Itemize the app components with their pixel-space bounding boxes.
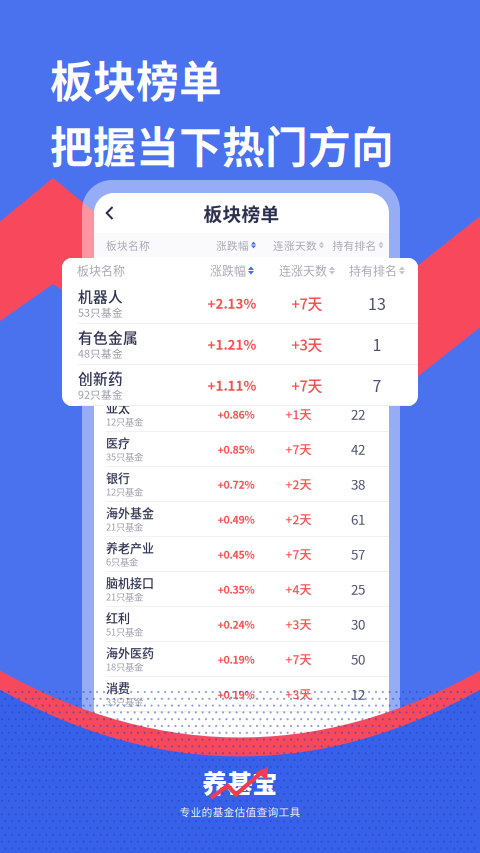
button[interactable]: 持有排名 <box>330 237 385 253</box>
staticText: +2.13% <box>207 293 256 313</box>
staticText: 61 <box>351 509 365 529</box>
staticText: +2天 <box>285 510 311 528</box>
staticText: +3天 <box>285 615 311 633</box>
staticText: +0.24% <box>217 616 254 632</box>
staticText: 53只基金 <box>78 304 123 320</box>
button[interactable]: 机器人 <box>94 257 389 292</box>
staticText: 板块榜单 <box>203 199 279 226</box>
staticText: 51只基金 <box>106 625 143 638</box>
staticText: 养基宝 <box>202 764 277 800</box>
button[interactable]: 红利 <box>94 607 389 642</box>
button[interactable]: 持有排名 <box>347 262 407 279</box>
staticText: 连涨天数 <box>279 262 327 279</box>
staticText: 33只基金 <box>106 695 143 708</box>
staticText: 6只基金 <box>106 555 138 568</box>
staticText: 银行 <box>106 469 130 487</box>
button[interactable]: 涨跌幅 <box>214 237 258 253</box>
button[interactable]: 医疗 <box>94 432 389 467</box>
staticText: +1.21% <box>217 301 254 317</box>
staticText: +7天 <box>285 440 311 458</box>
staticText: +0.85% <box>217 441 254 457</box>
staticText: 7 <box>372 373 381 397</box>
staticText: 25 <box>351 579 365 599</box>
staticText: 涨跌幅 <box>216 237 249 253</box>
staticText: +0.97% <box>217 371 254 387</box>
staticText: 海外医药 <box>106 644 154 662</box>
staticText: +7天 <box>285 265 311 283</box>
staticText: 38 <box>351 474 365 494</box>
button[interactable]: 消费 <box>94 677 389 712</box>
staticText: 板块名称 <box>106 237 150 253</box>
staticText: 专业的基金估值查询工具 <box>179 804 300 819</box>
staticText: 机器人 <box>78 285 123 307</box>
staticText: +3天 <box>285 300 311 318</box>
button[interactable]: 医药 <box>94 362 389 397</box>
button[interactable]: 创新药 <box>94 327 389 362</box>
staticText: +7天 <box>291 374 322 396</box>
staticText: 53只基金 <box>106 275 143 288</box>
button[interactable]: 亚太 <box>94 397 389 432</box>
staticText: 48只基金 <box>78 345 123 361</box>
button[interactable]: 有色金属 <box>62 324 418 365</box>
staticText: 医药 <box>106 364 130 382</box>
button[interactable]: 海外医药 <box>94 642 389 677</box>
staticText: 连涨天数 <box>273 237 317 253</box>
staticText: +7天 <box>291 292 322 314</box>
button[interactable]: 机器人 <box>62 283 418 324</box>
staticText: 42 <box>351 439 365 459</box>
staticText: +1.11% <box>217 336 254 352</box>
button[interactable]: 返回 <box>94 196 126 230</box>
staticText: +1天 <box>285 370 311 388</box>
staticText: 红利 <box>106 609 130 627</box>
staticText: 13 <box>368 291 386 315</box>
button[interactable]: 有色金属 <box>94 292 389 327</box>
button[interactable]: 养老产业 <box>94 537 389 572</box>
button[interactable]: 连涨天数 <box>277 262 337 279</box>
button[interactable]: 银行 <box>94 467 389 502</box>
staticText: 12只基金 <box>106 415 143 428</box>
staticText: 21只基金 <box>106 590 143 603</box>
staticText: 35只基金 <box>106 450 143 463</box>
staticText: +4天 <box>285 580 311 598</box>
button[interactable]: 连涨天数 <box>271 237 326 253</box>
staticText: 57 <box>351 544 365 564</box>
staticText: 涨跌幅 <box>210 262 246 279</box>
staticText: 48只基金 <box>106 310 143 323</box>
staticText: 板块榜单 <box>50 48 222 110</box>
staticText: 持有排名 <box>349 262 397 279</box>
staticText: 13 <box>351 264 365 284</box>
staticText: +1.11% <box>207 375 256 395</box>
staticText: 30 <box>351 614 365 634</box>
staticText: +7天 <box>285 335 311 353</box>
staticText: 消费 <box>106 679 130 697</box>
staticText: 养老产业 <box>106 539 154 557</box>
staticText: 持有排名 <box>332 237 376 253</box>
staticText: +0.49% <box>217 511 254 527</box>
staticText: 92只基金 <box>78 386 123 402</box>
staticText: +1.21% <box>207 334 256 354</box>
staticText: 12 <box>351 684 365 704</box>
staticText: 22 <box>351 404 365 424</box>
staticText: +0.19% <box>217 686 254 702</box>
button[interactable]: 涨跌幅 <box>208 262 256 279</box>
staticText: 创新药 <box>78 367 123 389</box>
staticText: +7天 <box>285 545 311 563</box>
staticText: 48只基金 <box>106 380 143 393</box>
staticText: 创新药 <box>106 329 142 347</box>
staticText: 把握当下热门方向 <box>50 114 394 176</box>
staticText: 亚太 <box>106 399 130 417</box>
staticText: +0.45% <box>217 546 254 562</box>
staticText: 12只基金 <box>106 485 143 498</box>
staticText: 有色金属 <box>106 294 154 312</box>
staticText: +2.13% <box>217 266 254 282</box>
button[interactable]: 海外基金 <box>94 502 389 537</box>
button[interactable]: 脑机接口 <box>94 572 389 607</box>
staticText: 1 <box>372 332 381 356</box>
button[interactable]: 创新药 <box>62 365 418 406</box>
staticText: +0.19% <box>217 651 254 667</box>
staticText: 海外基金 <box>106 504 154 522</box>
staticText: 18只基金 <box>106 660 143 673</box>
